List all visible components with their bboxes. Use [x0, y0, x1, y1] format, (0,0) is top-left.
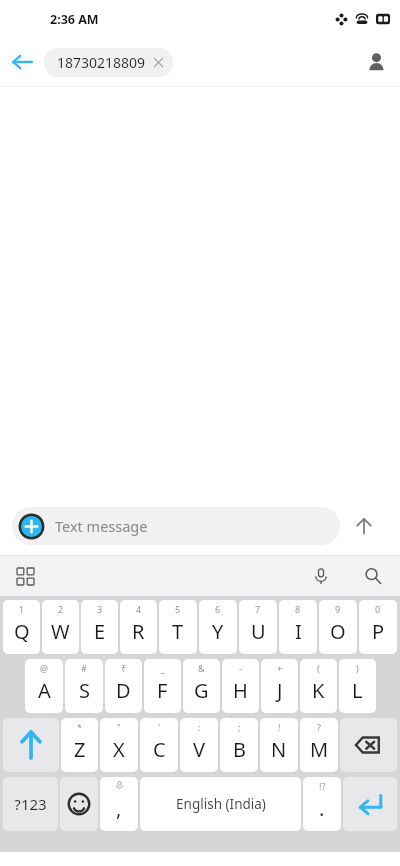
button[interactable]: ': [140, 718, 178, 772]
staticText: _: [161, 662, 165, 674]
staticText: V: [193, 736, 205, 763]
button[interactable]: 8: [279, 600, 317, 654]
staticText: ;: [238, 721, 241, 733]
staticText: Y: [212, 618, 224, 645]
button[interactable]: 0: [359, 600, 397, 654]
staticText: #: [81, 662, 87, 674]
button[interactable]: Back: [0, 40, 44, 84]
button[interactable]: ,: [100, 777, 138, 831]
staticText: 1: [19, 603, 25, 615]
staticText: 5: [175, 603, 181, 615]
button[interactable]: ": [100, 718, 138, 772]
staticText: Text message: [55, 516, 148, 536]
staticText: L: [352, 677, 363, 704]
staticText: A: [38, 677, 51, 704]
button[interactable]: (: [300, 659, 337, 713]
button[interactable]: Send: [340, 502, 388, 550]
staticText: M: [310, 736, 329, 763]
button[interactable]: -: [222, 659, 259, 713]
button[interactable]: Backspace: [340, 718, 397, 772]
staticText: G: [194, 677, 209, 704]
button[interactable]: Add attachment: [12, 507, 340, 545]
staticText: ": [117, 721, 121, 733]
staticText: 3: [97, 603, 103, 615]
button[interactable]: 6: [199, 600, 237, 654]
staticText: P: [372, 618, 385, 645]
button[interactable]: _: [144, 659, 181, 713]
button[interactable]: !?: [303, 777, 341, 831]
button[interactable]: 9: [319, 600, 357, 654]
button[interactable]: *: [61, 718, 98, 772]
staticText: 18730218809: [57, 53, 146, 72]
staticText: B: [233, 736, 246, 763]
staticText: 6: [215, 603, 221, 615]
staticText: J: [277, 677, 283, 704]
staticText: 7: [255, 603, 261, 615]
staticText: X: [113, 736, 125, 763]
staticText: 8: [295, 603, 301, 615]
staticText: F: [157, 677, 168, 704]
button[interactable]: Shift: [3, 718, 59, 772]
staticText: &: [198, 662, 205, 674]
staticText: 2: [58, 603, 64, 615]
button[interactable]: 2: [42, 600, 79, 654]
staticText: !: [278, 721, 281, 733]
button[interactable]: Add attachment: [16, 511, 46, 541]
staticText: @: [40, 662, 49, 674]
button[interactable]: ?123: [3, 777, 58, 831]
staticText: :: [198, 721, 201, 733]
button[interactable]: !: [260, 718, 298, 772]
staticText: C: [153, 736, 166, 763]
button[interactable]: +: [261, 659, 298, 713]
button[interactable]: 4: [120, 600, 157, 654]
button[interactable]: #: [65, 659, 103, 713]
staticText: I: [295, 618, 302, 645]
staticText: N: [271, 736, 287, 763]
button[interactable]: Contact: [352, 38, 400, 86]
staticText: D: [116, 677, 131, 704]
button[interactable]: :: [180, 718, 218, 772]
staticText: T: [172, 618, 184, 645]
staticText: 2:36 AM: [50, 11, 99, 28]
staticText: 4: [136, 603, 142, 615]
staticText: K: [312, 677, 325, 704]
button[interactable]: Clipboard: [10, 561, 40, 591]
staticText: U: [251, 618, 266, 645]
button[interactable]: 5: [159, 600, 197, 654]
button[interactable]: 18730218809: [44, 48, 173, 77]
button[interactable]: English (India): [140, 777, 301, 831]
staticText: H: [233, 677, 248, 704]
button[interactable]: Emoji: [60, 777, 98, 831]
staticText: ': [158, 721, 161, 733]
button[interactable]: Enter: [343, 777, 397, 831]
button[interactable]: ?: [300, 718, 338, 772]
staticText: Q: [14, 618, 30, 645]
button[interactable]: @: [25, 659, 63, 713]
staticText: R: [132, 618, 145, 645]
staticText: (: [317, 662, 320, 674]
button[interactable]: ₹: [105, 659, 142, 713]
button[interactable]: Voice input: [306, 561, 336, 591]
button[interactable]: 7: [239, 600, 277, 654]
staticText: ₹: [121, 662, 127, 674]
button[interactable]: ;: [220, 718, 258, 772]
staticText: *: [77, 721, 82, 733]
staticText: ,: [116, 795, 122, 822]
staticText: Z: [74, 736, 86, 763]
staticText: E: [94, 618, 106, 645]
staticText: ?: [317, 721, 321, 733]
staticText: .: [319, 795, 325, 822]
button[interactable]: &: [183, 659, 220, 713]
staticText: +: [277, 662, 283, 674]
button[interactable]: 3: [81, 600, 118, 654]
staticText: ): [356, 662, 359, 674]
staticText: W: [51, 618, 70, 645]
staticText: S: [79, 677, 90, 704]
button[interactable]: ): [339, 659, 376, 713]
staticText: ?123: [14, 794, 47, 814]
staticText: !?: [319, 780, 326, 792]
button[interactable]: Search: [358, 561, 388, 591]
button[interactable]: 1: [3, 600, 40, 654]
staticText: 0: [375, 603, 381, 615]
staticText: -: [239, 662, 242, 674]
